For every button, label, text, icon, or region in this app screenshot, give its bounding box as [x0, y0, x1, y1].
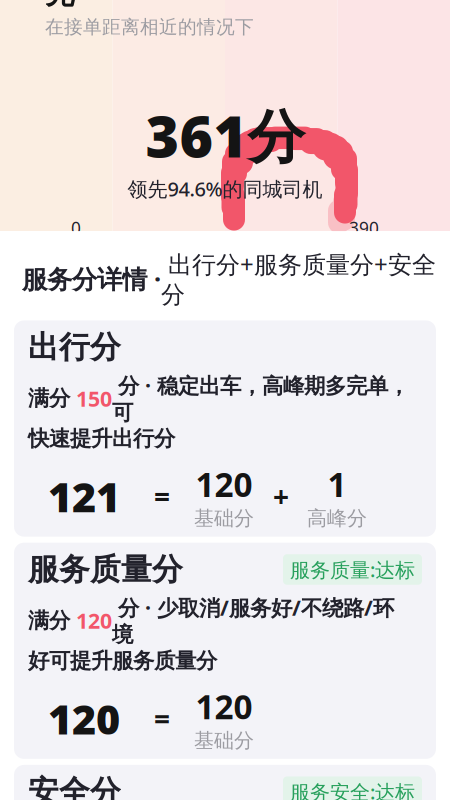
- button[interactable]: 安全分: [14, 765, 436, 800]
- staticText: 出行分: [28, 328, 121, 366]
- staticText: 150: [76, 384, 112, 412]
- staticText: 1: [327, 462, 346, 506]
- staticText: 服务质量:达标: [290, 556, 415, 583]
- staticText: 分 · 少取消/服务好/不绕路/环境: [112, 593, 394, 648]
- button[interactable]: 出行分: [14, 320, 436, 537]
- staticText: =: [154, 700, 170, 737]
- staticText: 服务安全:达标: [290, 778, 415, 800]
- staticText: 满分: [28, 607, 76, 634]
- staticText: 390: [349, 217, 379, 240]
- staticText: 120: [195, 462, 252, 506]
- staticText: 领先94.6%的同城司机: [127, 175, 322, 202]
- staticText: 先: [45, 0, 74, 12]
- staticText: 基础分: [194, 728, 254, 753]
- staticText: 120: [195, 684, 252, 728]
- staticText: 120: [76, 606, 112, 635]
- staticText: 好可提升服务质量分: [28, 648, 217, 674]
- button[interactable]: 服务质量分: [14, 543, 436, 759]
- staticText: 快速提升出行分: [28, 426, 175, 452]
- staticText: 361分: [145, 97, 304, 173]
- staticText: 出行分+服务质量分+安全分: [161, 248, 436, 309]
- staticText: =: [154, 478, 170, 515]
- staticText: 服务分详情 ·: [22, 262, 161, 295]
- staticText: +: [273, 478, 289, 515]
- staticText: 安全分: [28, 773, 121, 800]
- staticText: 分 · 稳定出车，高峰期多完单，可: [112, 371, 409, 426]
- staticText: 0: [71, 217, 81, 240]
- staticText: 121: [48, 469, 120, 524]
- staticText: 满分: [28, 385, 76, 411]
- staticText: 在接单距离相近的情况下: [45, 16, 254, 39]
- staticText: 基础分: [194, 506, 254, 531]
- staticText: 服务质量分: [28, 551, 183, 588]
- staticText: 高峰分: [307, 506, 367, 531]
- staticText: 120: [48, 691, 120, 746]
